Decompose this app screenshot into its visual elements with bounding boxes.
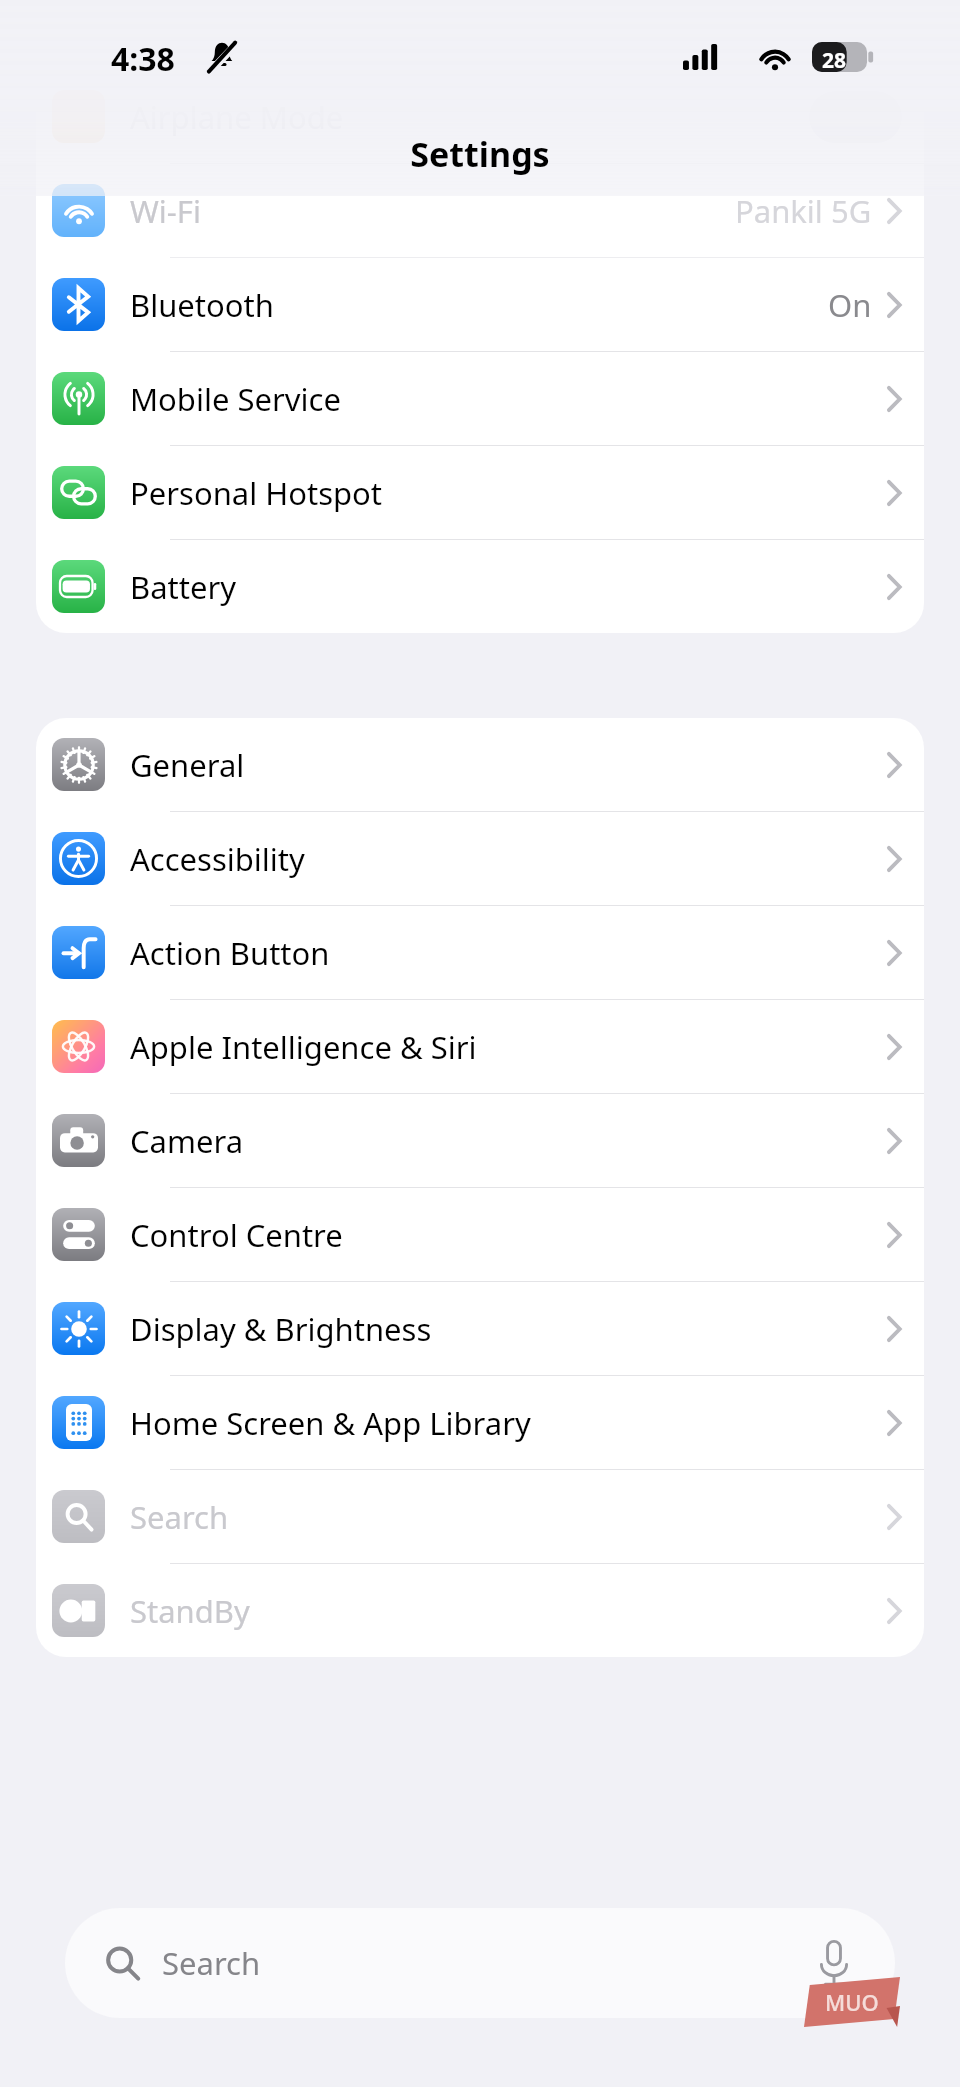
staticText: General — [130, 744, 245, 786]
staticText: Accessibility — [130, 838, 305, 880]
button[interactable]: StandBy — [36, 1564, 924, 1657]
staticText: Settings — [0, 131, 960, 177]
button[interactable]: Display & Brightness — [36, 1282, 924, 1375]
staticText: MUO — [825, 1987, 879, 2017]
staticText: Camera — [130, 1120, 244, 1162]
button[interactable]: Mobile Service — [36, 352, 924, 445]
staticText: Pankil 5G — [735, 190, 872, 232]
button[interactable]: Battery — [36, 540, 924, 633]
staticText: Personal Hotspot — [130, 472, 383, 514]
button[interactable]: Home Screen & App Library — [36, 1376, 924, 1469]
staticText: On — [828, 284, 872, 326]
staticText: 28 — [822, 46, 847, 75]
staticText: Action Button — [130, 932, 330, 974]
button[interactable]: Apple Intelligence & Siri — [36, 1000, 924, 1093]
button[interactable]: Bluetooth — [36, 258, 924, 351]
staticText: 4:38 — [111, 37, 175, 81]
button[interactable]: Airplane Mode — [36, 70, 924, 163]
staticText: Display & Brightness — [130, 1308, 432, 1350]
button[interactable]: Voice search — [817, 1940, 851, 1987]
staticText: Search — [130, 1496, 229, 1538]
button[interactable]: Search — [65, 1908, 895, 2018]
button[interactable]: Accessibility — [36, 812, 924, 905]
staticText: Wi-Fi — [130, 190, 201, 232]
button[interactable]: General — [36, 718, 924, 811]
button[interactable]: Wi-Fi — [36, 164, 924, 257]
staticText: StandBy — [130, 1590, 250, 1632]
staticText: Battery — [130, 566, 237, 608]
staticText: Apple Intelligence & Siri — [130, 1026, 477, 1068]
staticText: Control Centre — [130, 1214, 343, 1256]
staticText: Bluetooth — [130, 284, 274, 326]
button[interactable]: Search — [36, 1470, 924, 1563]
button[interactable]: Control Centre — [36, 1188, 924, 1281]
button[interactable]: Personal Hotspot — [36, 446, 924, 539]
staticText: Mobile Service — [130, 378, 341, 420]
staticText: Search — [162, 1942, 261, 1984]
button[interactable]: Camera — [36, 1094, 924, 1187]
staticText: Home Screen & App Library — [130, 1402, 531, 1444]
button[interactable]: Action Button — [36, 906, 924, 999]
